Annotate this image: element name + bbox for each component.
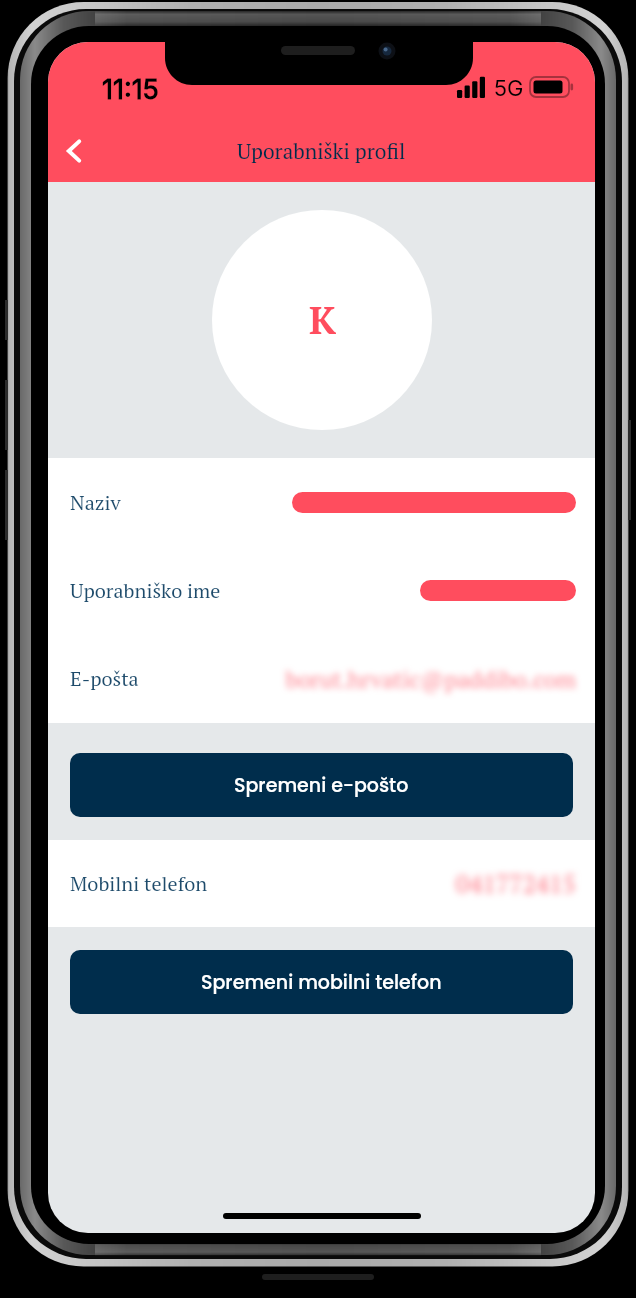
staticText: Spremeni e-pošto [234, 772, 409, 799]
staticText: Naziv [70, 489, 121, 516]
staticText: Spremeni mobilni telefon [201, 969, 442, 996]
staticText: 5G [494, 75, 524, 102]
button[interactable]: Naziv [48, 458, 595, 546]
button[interactable]: Spremeni e-pošto [70, 753, 573, 817]
staticText: K [309, 295, 336, 345]
button[interactable]: E-pošta [48, 634, 595, 722]
button[interactable]: Spremeni mobilni telefon [70, 950, 573, 1014]
staticText: Uporabniški profil [237, 137, 406, 165]
button[interactable]: Back [52, 129, 96, 173]
staticText: 11:15 [102, 73, 159, 106]
button[interactable]: Uporabniško ime [48, 546, 595, 634]
staticText: E-pošta [70, 665, 139, 692]
button[interactable]: Mobilni telefon [48, 840, 595, 927]
staticText: Mobilni telefon [70, 870, 208, 897]
staticText: Uporabniško ime [70, 577, 221, 604]
